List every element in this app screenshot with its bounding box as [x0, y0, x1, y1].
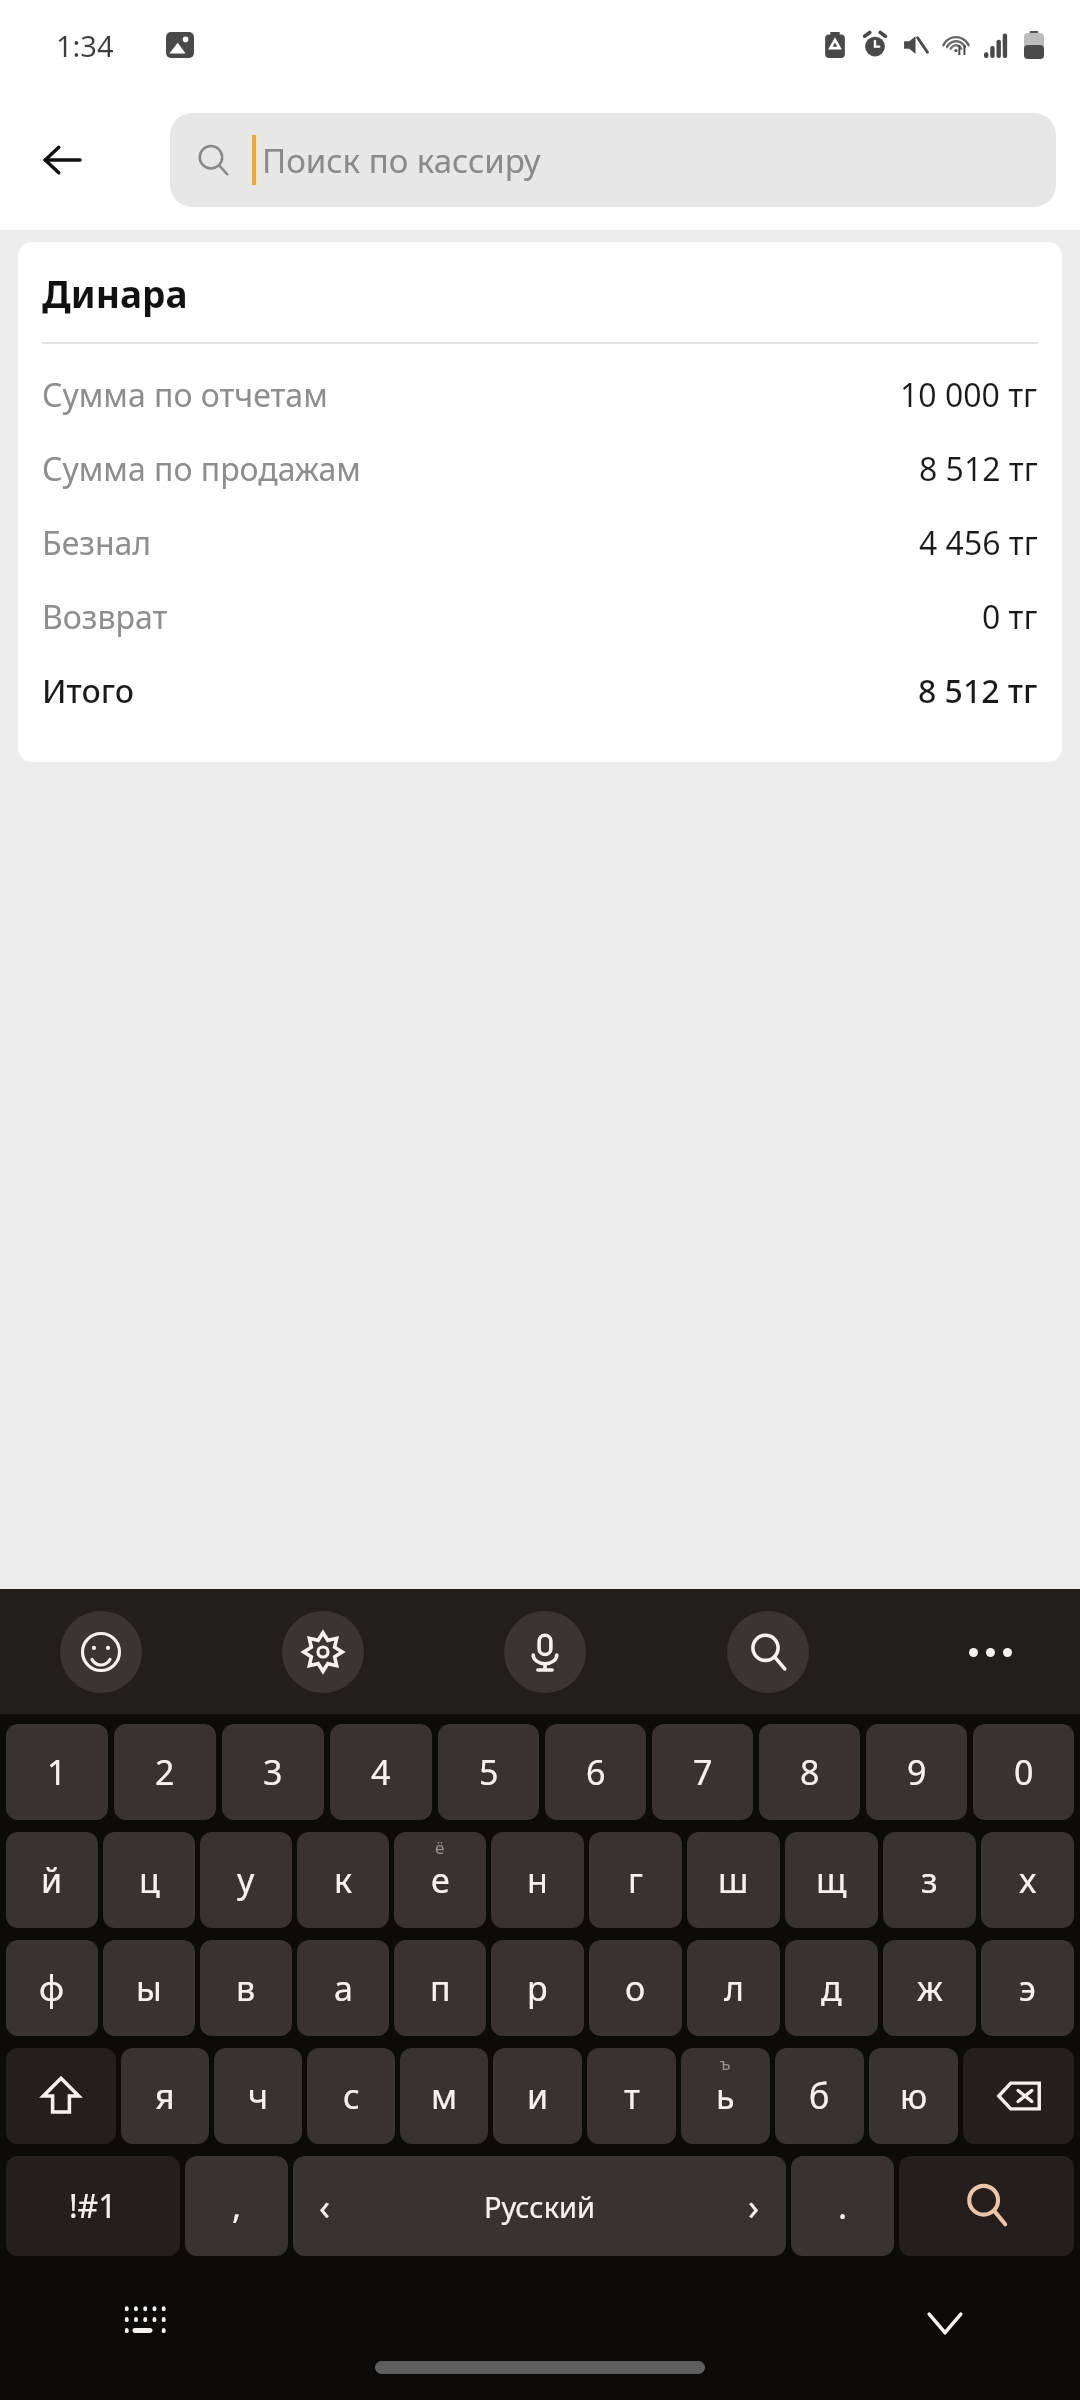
staticText: 4 [371, 1749, 391, 1795]
staticText: з [921, 1857, 938, 1903]
button[interactable]: 2 [114, 1724, 216, 1820]
button[interactable]: 0 [973, 1724, 1074, 1820]
button[interactable]: Voice input [504, 1611, 586, 1693]
button[interactable]: . [791, 2156, 894, 2256]
button[interactable]: б [775, 2048, 864, 2144]
staticText: 0 [1014, 1749, 1034, 1795]
button[interactable]: Поиск по кассиру [170, 113, 1056, 207]
staticText: щ [816, 1857, 847, 1903]
button[interactable]: Search [899, 2156, 1074, 2256]
staticText: д [821, 1965, 842, 2011]
staticText: я [155, 2073, 175, 2119]
staticText: ж [917, 1965, 943, 2011]
staticText: 2 [155, 1749, 175, 1795]
button[interactable]: 6 [545, 1724, 646, 1820]
button[interactable]: 1 [6, 1724, 108, 1820]
staticText: 0 тг [982, 595, 1038, 639]
staticText: ц [139, 1857, 160, 1903]
staticText: Итого [42, 669, 135, 713]
button[interactable]: 9 [866, 1724, 967, 1820]
staticText: 3 [263, 1749, 283, 1795]
button[interactable]: Hide keyboard [910, 2288, 980, 2358]
button[interactable]: More options [950, 1612, 1030, 1692]
staticText: 4 456 тг [919, 521, 1038, 565]
button[interactable]: э [981, 1940, 1074, 2036]
button[interactable]: о [589, 1940, 682, 2036]
staticText: 8 512 тг [919, 447, 1038, 491]
button[interactable]: ж [883, 1940, 976, 2036]
staticText: , [232, 2183, 242, 2229]
staticText: и [527, 2073, 549, 2119]
button[interactable]: ё [394, 1832, 486, 1928]
button[interactable]: х [981, 1832, 1074, 1928]
button[interactable]: ю [869, 2048, 958, 2144]
staticText: 10 000 тг [900, 373, 1038, 417]
button[interactable]: Search [727, 1611, 809, 1693]
button[interactable]: ы [103, 1940, 195, 2036]
button[interactable]: 4 [330, 1724, 432, 1820]
staticText: › [748, 2182, 760, 2231]
button[interactable]: л [687, 1940, 780, 2036]
button[interactable]: д [785, 1940, 878, 2036]
button[interactable]: 8 [759, 1724, 860, 1820]
staticText: Поиск по кассиру [262, 138, 541, 183]
button[interactable]: 3 [222, 1724, 324, 1820]
staticText: Безнал [42, 521, 152, 565]
button[interactable]: Emoji [60, 1611, 142, 1693]
button[interactable]: Settings [282, 1611, 364, 1693]
staticText: 1 [47, 1749, 67, 1795]
button[interactable]: с [307, 2048, 395, 2144]
button[interactable]: щ [785, 1832, 878, 1928]
staticText: Динара [42, 268, 188, 318]
button[interactable]: Shift [6, 2048, 116, 2144]
button[interactable]: з [883, 1832, 976, 1928]
button[interactable]: Динара [18, 242, 1062, 762]
button[interactable]: а [297, 1940, 389, 2036]
button[interactable]: Switch keyboard [110, 2288, 180, 2358]
button[interactable]: !#1 [6, 2156, 180, 2256]
staticText: 7 [693, 1749, 713, 1795]
button[interactable]: 5 [438, 1724, 539, 1820]
button[interactable]: 7 [652, 1724, 753, 1820]
staticText: ю [900, 2073, 928, 2119]
button[interactable]: ф [6, 1940, 98, 2036]
button[interactable]: н [491, 1832, 584, 1928]
staticText: ш [718, 1857, 749, 1903]
button[interactable]: ъ [681, 2048, 770, 2144]
staticText: в [236, 1965, 256, 2011]
staticText: а [334, 1965, 353, 2011]
staticText: э [1019, 1965, 1036, 2011]
button[interactable]: т [587, 2048, 676, 2144]
button[interactable]: г [589, 1832, 682, 1928]
button[interactable]: м [400, 2048, 488, 2144]
staticText: Русский [331, 2187, 748, 2226]
button[interactable]: в [200, 1940, 292, 2036]
button[interactable]: и [493, 2048, 582, 2144]
button[interactable]: Backspace [963, 2048, 1074, 2144]
staticText: ъ [720, 2052, 731, 2075]
button[interactable]: , [185, 2156, 288, 2256]
button[interactable]: р [491, 1940, 584, 2036]
button[interactable]: п [394, 1940, 486, 2036]
staticText: й [41, 1857, 63, 1903]
staticText: 8 [800, 1749, 820, 1795]
button[interactable]: Back [24, 122, 100, 198]
staticText: 8 512 тг [918, 669, 1038, 713]
button[interactable]: ш [687, 1832, 780, 1928]
staticText: г [628, 1857, 643, 1903]
staticText: т [624, 2073, 640, 2119]
staticText: ь [716, 2073, 735, 2119]
staticText: ё [435, 1836, 445, 1859]
staticText: е [431, 1857, 450, 1903]
button[interactable]: ч [214, 2048, 302, 2144]
staticText: 9 [907, 1749, 927, 1795]
button[interactable]: к [297, 1832, 389, 1928]
button[interactable]: у [200, 1832, 292, 1928]
button[interactable]: ‹ [293, 2156, 786, 2256]
button[interactable]: я [121, 2048, 209, 2144]
button[interactable]: ц [103, 1832, 195, 1928]
button[interactable]: й [6, 1832, 98, 1928]
staticText: Сумма по продажам [42, 447, 361, 491]
staticText: х [1019, 1857, 1037, 1903]
staticText: у [237, 1857, 255, 1903]
